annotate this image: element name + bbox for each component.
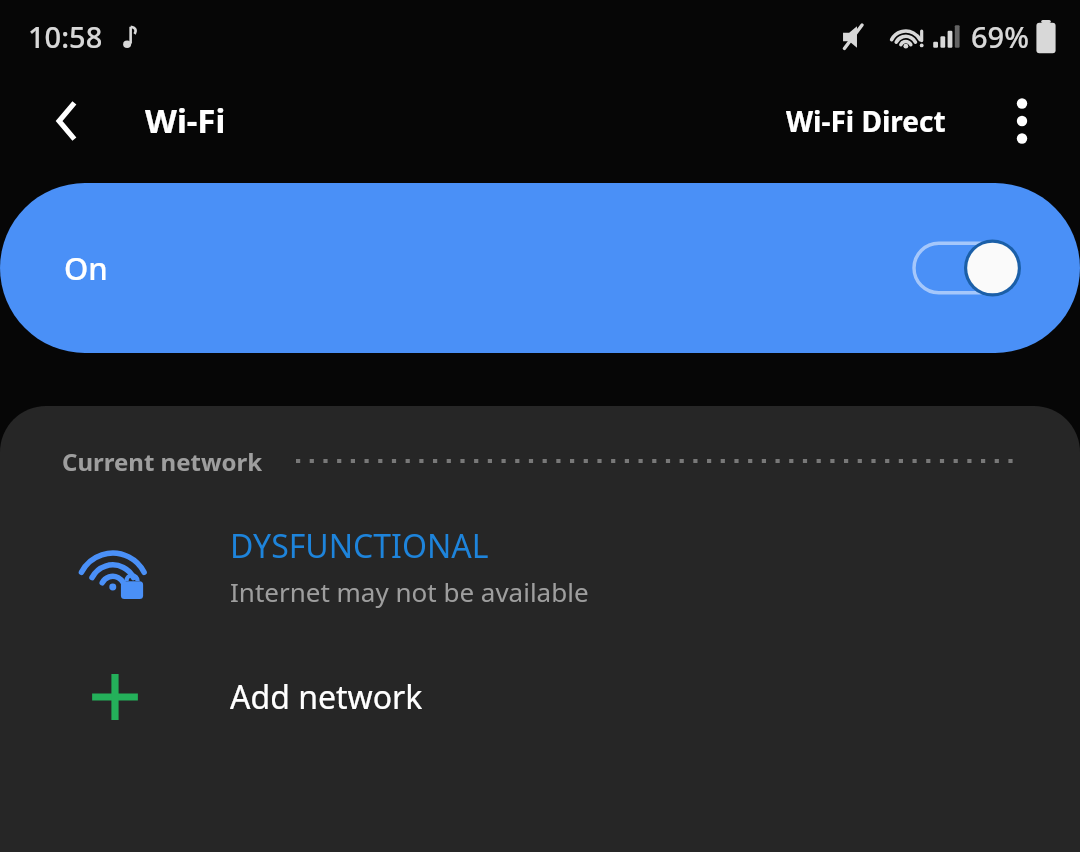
button[interactable]: On — [0, 183, 1080, 353]
staticText: 69% — [971, 17, 1029, 56]
staticText: On — [64, 247, 108, 289]
staticText: Current network — [62, 445, 263, 478]
staticText: Wi-Fi Direct — [786, 102, 946, 140]
staticText: DYSFUNCTIONAL — [230, 524, 489, 568]
button[interactable]: Back — [38, 90, 100, 152]
button[interactable]: Wi-Fi Direct — [780, 92, 952, 150]
staticText: 10:58 — [28, 17, 103, 56]
staticText: Add network — [230, 675, 423, 719]
button[interactable]: More options — [994, 93, 1050, 149]
button[interactable]: Add network — [0, 644, 1080, 750]
button[interactable]: DYSFUNCTIONAL — [0, 506, 1080, 626]
staticText: Internet may not be available — [230, 574, 589, 609]
staticText: Wi-Fi — [145, 98, 226, 143]
